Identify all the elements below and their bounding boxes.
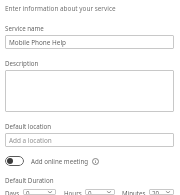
button[interactable]: Add online meeting (31, 157, 99, 165)
button[interactable] (5, 70, 174, 112)
button[interactable]: Add a location (5, 133, 174, 147)
staticText: Mobile Phone Help (9, 38, 66, 47)
staticText: 0 (88, 189, 92, 195)
staticText: Hours (64, 189, 82, 195)
staticText: Description (5, 59, 39, 67)
button[interactable]: Mobile Phone Help (5, 35, 174, 49)
staticText: Add online meeting (31, 157, 89, 165)
staticText: 0 (26, 189, 30, 195)
button[interactable]: 20 (149, 189, 174, 195)
button[interactable]: 0 (85, 189, 115, 195)
staticText: Default location (5, 122, 52, 130)
other: Information (92, 158, 99, 165)
staticText: Add a location (9, 136, 52, 145)
staticText: 20 (152, 189, 160, 195)
button[interactable]: Add online meeting toggle (5, 156, 24, 166)
staticText: Enter information about your service (5, 4, 116, 13)
staticText: Days (5, 189, 20, 195)
staticText: Service name (5, 24, 44, 32)
staticText: Default Duration (5, 176, 54, 184)
button[interactable]: 0 (23, 189, 56, 195)
staticText: Minutes (122, 189, 146, 195)
